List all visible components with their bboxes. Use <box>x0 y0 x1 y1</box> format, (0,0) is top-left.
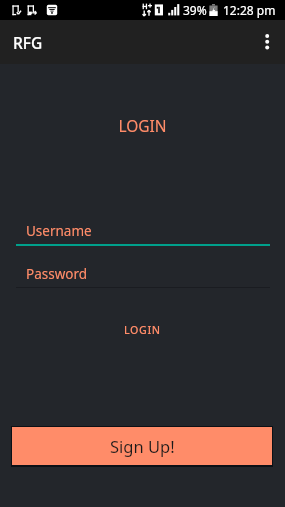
staticText: Sign Up! <box>110 435 175 457</box>
button[interactable]: More options <box>245 22 285 62</box>
staticText: Password <box>26 265 88 283</box>
button[interactable]: Sign Up! <box>12 427 272 465</box>
button[interactable]: LOGIN <box>0 316 285 344</box>
staticText: RFG <box>13 32 43 53</box>
staticText: LOGIN <box>0 115 285 136</box>
staticText: 39% <box>183 2 207 18</box>
staticText: LOGIN <box>124 323 161 338</box>
button[interactable]: Username <box>16 218 270 246</box>
button[interactable]: Password <box>16 261 270 288</box>
staticText: Username <box>26 222 92 240</box>
staticText: 12:28 pm <box>223 2 276 18</box>
